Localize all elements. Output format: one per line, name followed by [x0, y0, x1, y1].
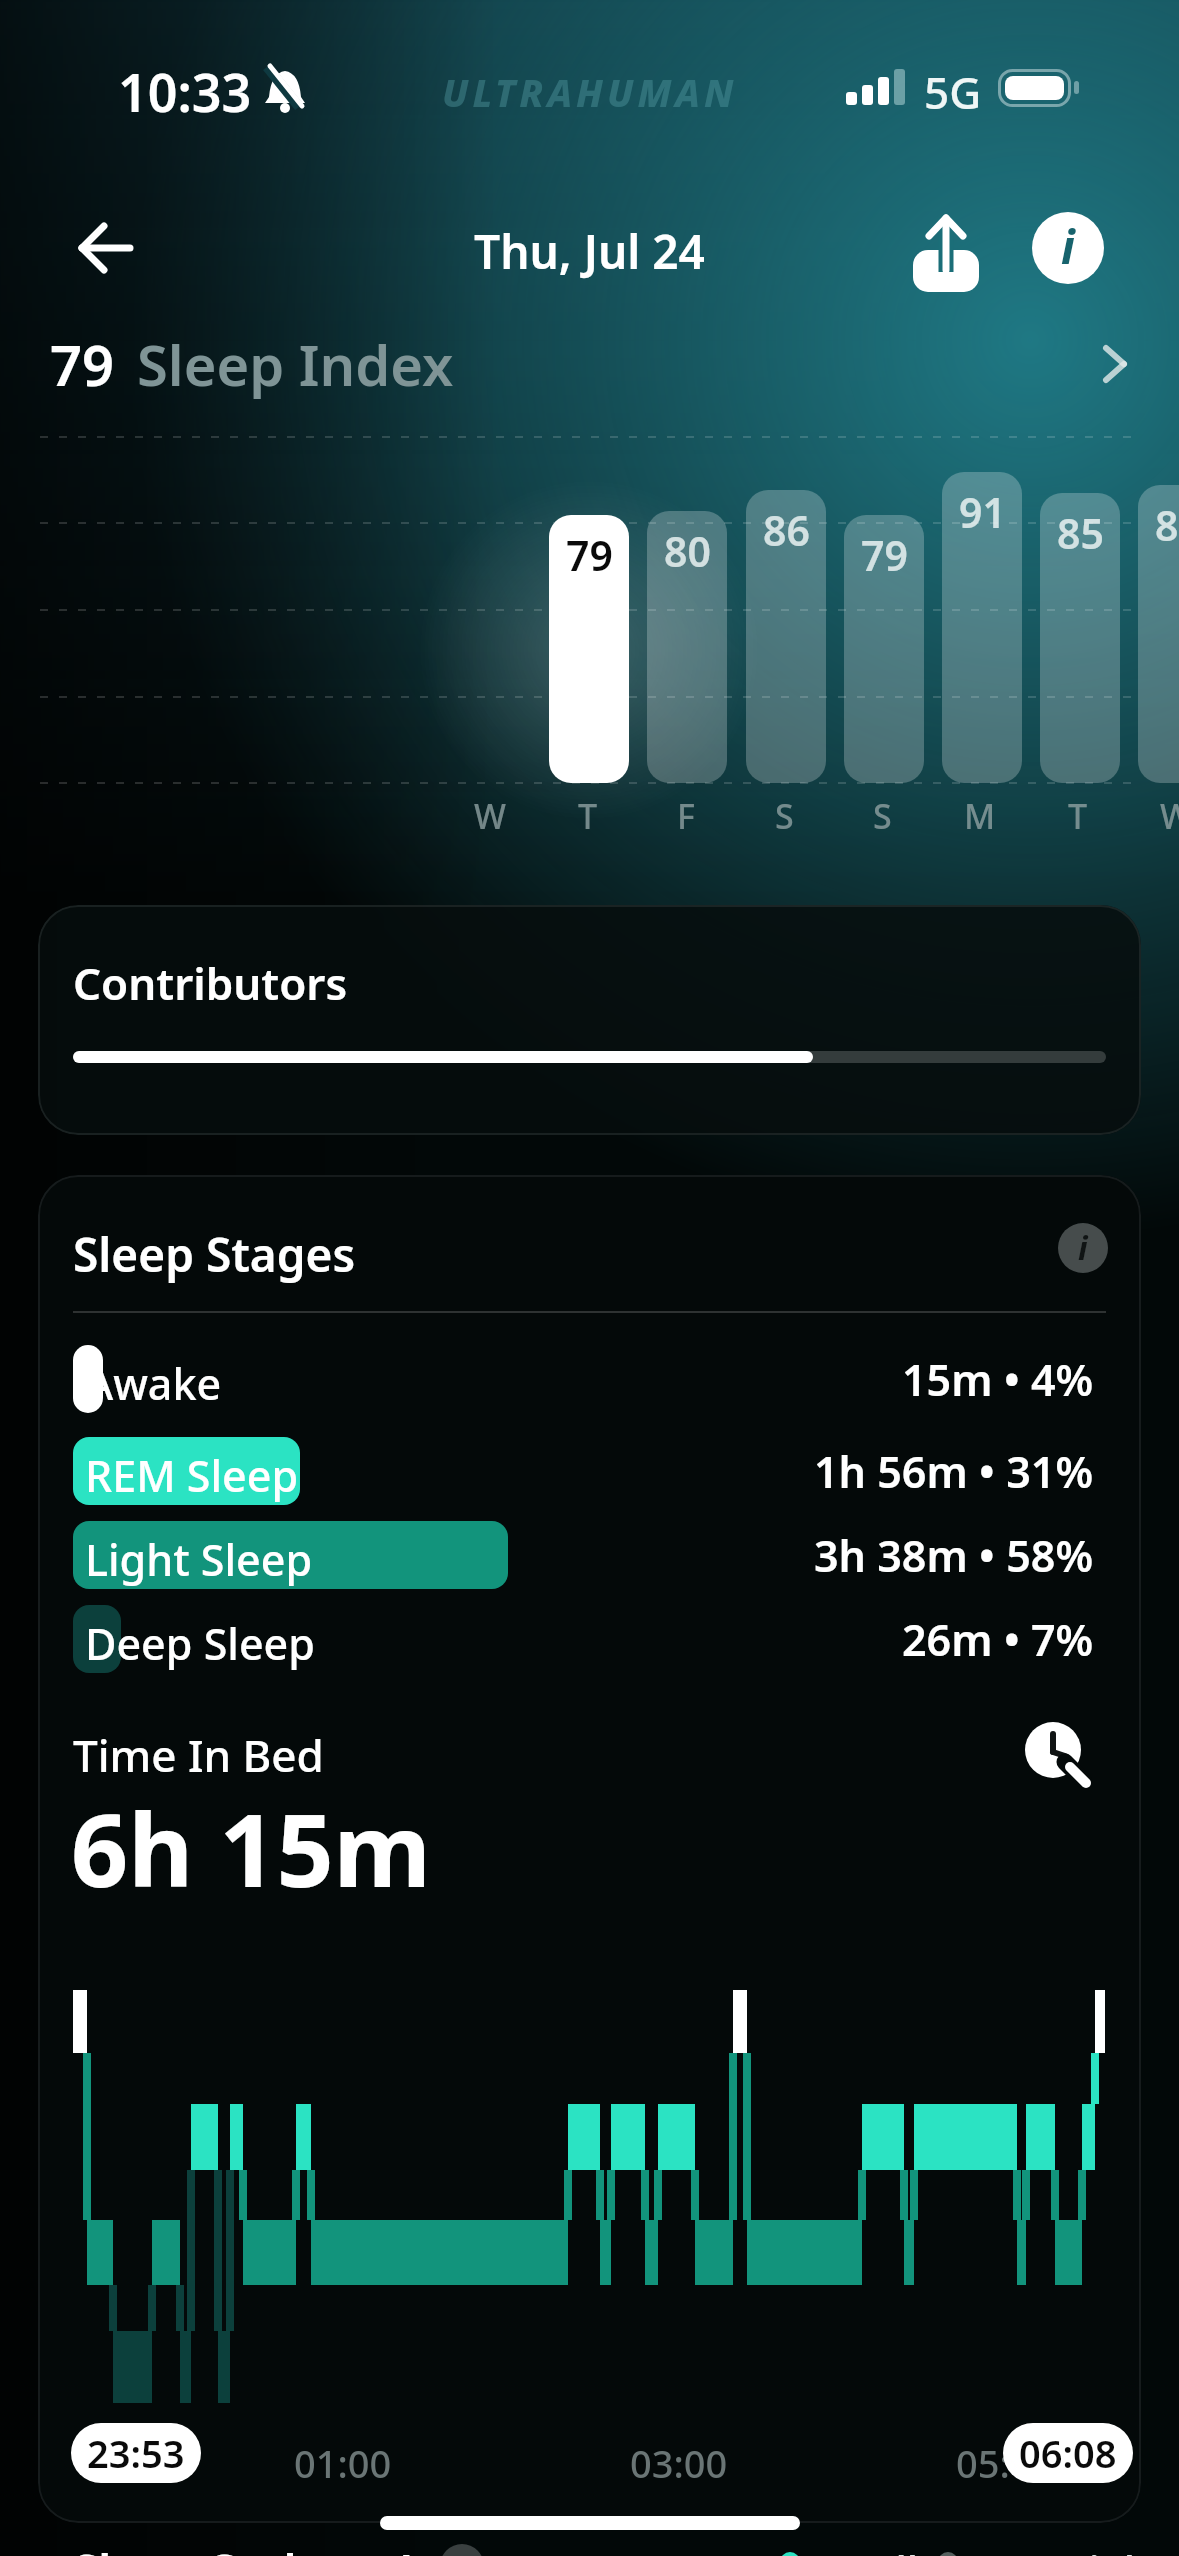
button[interactable]: i — [1032, 212, 1104, 284]
staticText: 4 — [388, 2540, 415, 2556]
staticText: 26m • 7% — [902, 1610, 1094, 1669]
staticText: 86 — [1155, 497, 1179, 553]
staticText: ULTRAHUMAN — [442, 66, 738, 118]
staticText: 1 Partial — [970, 2542, 1136, 2556]
staticText: 6h 15m — [71, 1780, 432, 1916]
staticText: 80 — [664, 523, 711, 579]
staticText: M — [964, 793, 996, 839]
staticText: S — [775, 793, 794, 839]
staticText: Light Sleep — [85, 1530, 313, 1589]
staticText: F — [677, 793, 695, 839]
staticText: Contributors — [73, 953, 348, 1013]
staticText: 15m • 4% — [902, 1350, 1094, 1409]
button[interactable]: Awake — [73, 1345, 1094, 1413]
staticText: 91 — [959, 484, 1006, 540]
staticText: Sleep Stages — [73, 1223, 356, 1286]
staticText: T — [578, 793, 598, 839]
staticText: 79 — [566, 527, 613, 583]
staticText: Sleep Index — [137, 326, 454, 402]
staticText: 3h 38m • 58% — [814, 1526, 1094, 1585]
button[interactable]: REM Sleep — [73, 1437, 1094, 1505]
button[interactable] — [74, 214, 142, 282]
staticText: 3 Full — [812, 2542, 919, 2556]
button[interactable]: 79 — [0, 326, 1179, 406]
staticText: REM Sleep — [85, 1446, 299, 1505]
button[interactable]: Contributors — [38, 905, 1141, 1135]
staticText: 03:00 — [630, 2437, 728, 2489]
staticText: i — [1078, 1226, 1088, 1270]
staticText: 06:08 — [1019, 2427, 1117, 2479]
staticText: i — [1061, 215, 1075, 278]
staticText: 05:00 — [956, 2437, 1054, 2489]
staticText: 23:53 — [87, 2427, 185, 2479]
staticText: Sleep Cycles — [73, 2540, 347, 2556]
staticText: 86 — [763, 502, 810, 558]
button[interactable]: Light Sleep — [73, 1521, 1094, 1589]
button[interactable]: Deep Sleep — [73, 1605, 1094, 1673]
staticText: 01:00 — [294, 2437, 392, 2489]
staticText: W — [1160, 793, 1179, 839]
button[interactable]: 23:53 — [71, 2423, 201, 2483]
staticText: Deep Sleep — [85, 1614, 315, 1673]
staticText: 1h 56m • 31% — [814, 1442, 1094, 1501]
staticText: Thu, Jul 24 — [474, 220, 705, 283]
staticText: Time In Bed — [73, 1725, 324, 1785]
button[interactable]: i — [1058, 1223, 1108, 1273]
staticText: 5G — [924, 62, 982, 122]
staticText: T — [1068, 793, 1088, 839]
staticText: Awake — [85, 1354, 222, 1413]
staticText: 10:33 — [118, 56, 252, 127]
staticText: W — [474, 793, 506, 839]
staticText: 79 — [50, 326, 115, 402]
button[interactable]: 06:08 — [1003, 2423, 1133, 2483]
staticText: 85 — [1057, 505, 1104, 561]
staticText: 79 — [861, 527, 908, 583]
button[interactable] — [1023, 1720, 1095, 1792]
button[interactable] — [908, 212, 984, 288]
staticText: S — [873, 793, 892, 839]
